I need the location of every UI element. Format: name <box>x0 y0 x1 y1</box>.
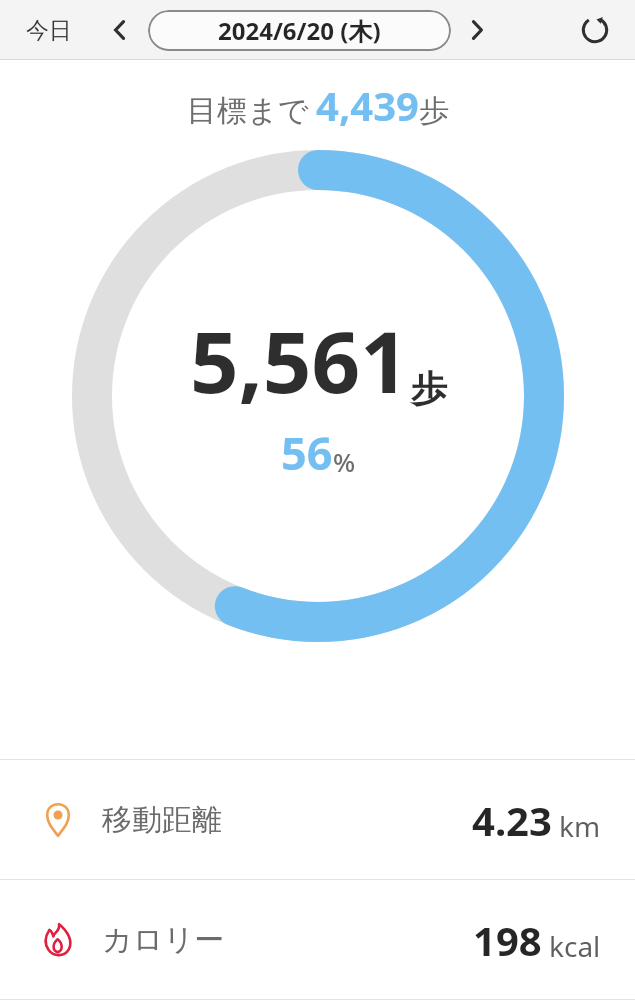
staticText: 目標まで <box>187 92 309 130</box>
button[interactable]: Calories <box>0 880 635 999</box>
button[interactable]: 今日 <box>18 10 80 51</box>
staticText: 198 <box>473 913 542 967</box>
other: Calories <box>38 920 78 960</box>
button[interactable]: Refresh <box>571 6 619 54</box>
staticText: kcal <box>549 927 601 965</box>
staticText: 5,561 <box>190 302 409 418</box>
staticText: % <box>333 444 356 479</box>
button[interactable]: Next day <box>455 8 499 52</box>
staticText: 4,439 <box>316 78 419 132</box>
staticText: 歩 <box>419 92 449 130</box>
staticText: 今日 <box>26 16 72 45</box>
button[interactable]: Distance <box>0 760 635 879</box>
button[interactable]: 2024/6/20 (木) <box>148 10 451 51</box>
staticText: 歩 <box>411 366 447 411</box>
staticText: 56 <box>281 422 333 483</box>
other: Distance <box>38 800 78 840</box>
staticText: 2024/6/20 (木) <box>218 14 381 47</box>
staticText: km <box>559 807 601 845</box>
staticText: 移動距離 <box>102 801 222 839</box>
staticText: カロリー <box>102 921 225 959</box>
button[interactable]: Previous day <box>98 8 142 52</box>
staticText: 4.23 <box>472 793 552 847</box>
